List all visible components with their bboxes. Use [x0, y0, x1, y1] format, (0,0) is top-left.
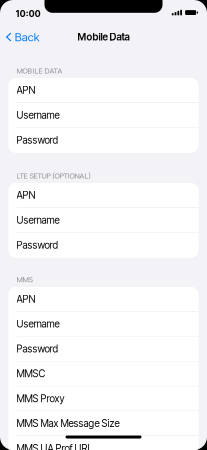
staticText: LTE SETUP (OPTIONAL): [16, 171, 90, 180]
button[interactable]: APN: [9, 78, 198, 103]
button[interactable]: Password: [9, 337, 198, 362]
staticText: MMS: [16, 275, 32, 284]
staticText: Back: [15, 30, 40, 44]
button[interactable]: MMS UA Prof URL: [9, 436, 198, 450]
staticText: Password: [16, 134, 58, 146]
staticText: MOBILE DATA: [16, 66, 62, 75]
staticText: MMS Proxy: [16, 393, 64, 404]
staticText: APN: [16, 293, 35, 305]
staticText: 10:00: [16, 9, 41, 19]
button[interactable]: MMSC: [9, 361, 198, 386]
button[interactable]: Password: [9, 128, 198, 153]
staticText: Username: [16, 318, 59, 330]
staticText: Password: [16, 343, 58, 355]
button[interactable]: Username: [9, 103, 198, 128]
staticText: APN: [16, 189, 35, 201]
button[interactable]: Password: [9, 233, 198, 258]
staticText: Password: [16, 239, 58, 251]
button[interactable]: APN: [9, 287, 198, 312]
staticText: Username: [16, 109, 59, 121]
staticText: APN: [16, 84, 35, 96]
staticText: MMS UA Prof URL: [16, 443, 92, 450]
button[interactable]: Username: [9, 208, 198, 233]
staticText: MMSC: [16, 368, 45, 380]
button[interactable]: MMS Proxy: [9, 386, 198, 411]
button[interactable]: MMS Max Message Size: [9, 411, 198, 436]
staticText: Username: [16, 214, 59, 226]
staticText: Mobile Data: [77, 31, 129, 43]
button[interactable]: Back: [0, 26, 40, 48]
button[interactable]: APN: [9, 183, 198, 208]
staticText: MMS Max Message Size: [16, 417, 119, 429]
button[interactable]: Username: [9, 312, 198, 337]
